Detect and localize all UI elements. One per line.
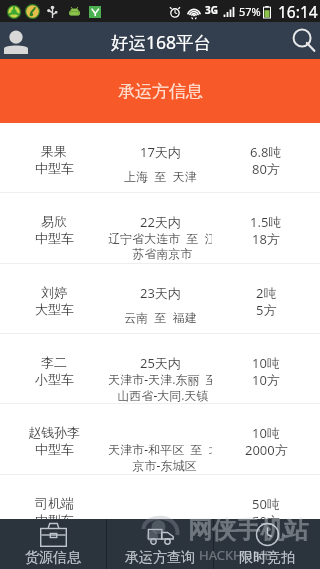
button[interactable]: Account — [0, 22, 40, 59]
staticText: 中型车 — [35, 160, 74, 176]
staticText: 云南 至 福建 — [124, 309, 197, 325]
staticText: 天津市-和平区 至 北 京市-东城区 — [108, 441, 212, 472]
staticText: 承运方查询 — [125, 549, 195, 567]
staticText: 17天内 — [140, 143, 181, 161]
staticText: 50吨 — [252, 495, 280, 513]
staticText: 限时竞拍 — [239, 549, 295, 567]
staticText: 10吨 — [252, 354, 280, 372]
staticText: 25天内 — [140, 354, 181, 372]
staticText: 23天内 — [140, 284, 181, 302]
button[interactable]: Search — [280, 22, 320, 59]
button[interactable]: 货源信息 — [0, 519, 106, 569]
button[interactable]: 易欣 — [0, 193, 320, 264]
staticText: 辽宁省大连市 至 江 苏省南京市 — [108, 230, 212, 261]
button[interactable]: 承运方查询 — [107, 519, 213, 569]
staticText: 上海 至 天津 — [124, 168, 197, 184]
staticText: 中型车 — [35, 512, 74, 528]
staticText: 2000方 — [245, 441, 288, 459]
staticText: 小型车 — [35, 371, 74, 387]
button[interactable]: 承运方信息 — [0, 59, 320, 123]
staticText: 18方 — [252, 230, 280, 248]
staticText: 李二 — [41, 354, 67, 370]
staticText: 赵钱孙李 — [28, 424, 80, 440]
staticText: 3G — [205, 3, 218, 17]
staticText: 刘婷 — [41, 284, 67, 300]
staticText: 网侠手机站 — [188, 515, 308, 545]
staticText: 中型车 — [35, 441, 74, 457]
staticText: 中型车 — [35, 230, 74, 246]
staticText: HACKHOME — [199, 546, 272, 564]
button[interactable]: 司机端 — [0, 475, 320, 545]
staticText: 5方 — [256, 301, 277, 319]
staticText: 50方 — [252, 512, 280, 530]
staticText: 承运方信息 — [118, 81, 203, 102]
staticText: 22天内 — [140, 213, 181, 231]
staticText: 6.8吨 — [250, 143, 282, 161]
staticText: 2吨 — [256, 284, 277, 302]
staticText: 1.5吨 — [250, 213, 282, 231]
staticText: 10吨 — [252, 424, 280, 442]
button[interactable]: 刘婷 — [0, 264, 320, 334]
button[interactable]: 赵钱孙李 — [0, 404, 320, 475]
staticText: 货源信息 — [25, 549, 81, 567]
staticText: 易欣 — [41, 213, 67, 229]
staticText: 10方 — [252, 371, 280, 389]
staticText: 57% — [239, 4, 261, 19]
staticText: 80方 — [252, 160, 280, 178]
staticText: 司机端 — [35, 495, 74, 511]
staticText: 果果 — [41, 143, 67, 159]
staticText: 好运168平台 — [111, 30, 212, 54]
staticText: 大型车 — [35, 301, 74, 317]
button[interactable]: 果果 — [0, 123, 320, 193]
button[interactable]: 限时竞拍 — [214, 519, 320, 569]
staticText: 天津市-天津.东丽 至 山西省-大同.天镇 — [108, 371, 212, 402]
staticText: 16:14 — [278, 1, 318, 22]
button[interactable]: 李二 — [0, 334, 320, 404]
